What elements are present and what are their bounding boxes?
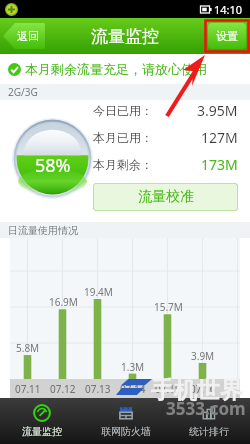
staticText: 127M	[201, 128, 238, 147]
button[interactable]: 流量校准	[93, 183, 238, 211]
staticText: 173M	[201, 155, 238, 174]
staticText: 3.95M	[197, 101, 238, 120]
staticText: 15.7M	[154, 300, 183, 314]
staticText: 58%	[35, 153, 71, 178]
staticText: 07.15	[155, 382, 181, 396]
staticText: 本月已用：	[93, 130, 153, 145]
staticText: 流量监控	[91, 26, 159, 47]
staticText: 3533.com	[166, 397, 246, 420]
staticText: 5.8M	[16, 341, 40, 355]
staticText: 本月剩余流量充足，请放心使用	[25, 61, 207, 77]
staticText: 流量监控	[22, 425, 62, 438]
staticText: 3.9M	[191, 349, 215, 363]
staticText: 07.11	[15, 382, 41, 396]
staticText: 联网防火墙	[101, 425, 151, 438]
staticText: 14:10	[214, 2, 243, 17]
staticText: 统计排行	[189, 425, 229, 438]
staticText: 07.12	[50, 382, 76, 396]
button[interactable]: 设置	[208, 23, 246, 49]
staticText: 07.16	[190, 382, 216, 396]
staticText: 手机世界	[151, 376, 243, 405]
staticText: 设置	[216, 29, 238, 43]
staticText: 流量校准	[138, 188, 194, 206]
staticText: 07.13	[85, 382, 111, 396]
staticText: 19.4M	[84, 285, 113, 299]
staticText: 2G/3G	[8, 85, 38, 99]
staticText: 07.14	[120, 382, 146, 396]
button[interactable]: 返回	[3, 23, 45, 49]
staticText: 1.3M	[121, 360, 145, 374]
staticText: 16.9M	[49, 295, 78, 309]
button[interactable]: 联网防火墙	[84, 398, 167, 444]
staticText: 日流量使用情况	[8, 224, 78, 237]
staticText: 返回	[17, 29, 39, 43]
button[interactable]: 流量监控	[0, 398, 84, 444]
staticText: 本月剩余：	[93, 157, 153, 172]
staticText: 今日已用：	[93, 103, 153, 118]
button[interactable]: 统计排行	[167, 398, 250, 444]
